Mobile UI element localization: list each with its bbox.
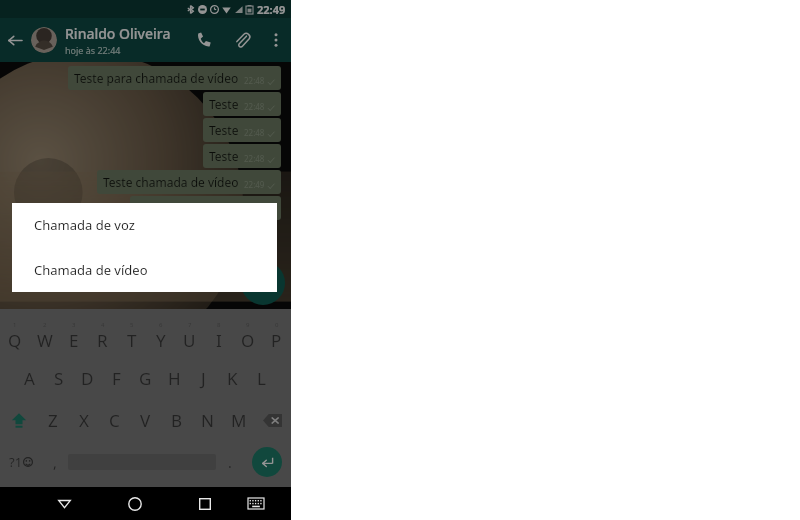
button[interactable]: S [44,357,73,399]
button[interactable]: 1 [0,315,30,357]
button[interactable]: Hide keyboard [44,487,84,520]
staticText: T [127,329,137,352]
button[interactable]: Attach [223,21,261,59]
staticText: K [227,367,238,390]
button[interactable]: Teste [203,118,281,142]
staticText: . [228,453,232,472]
staticText: 22:48 [244,75,265,86]
staticText: 5 [130,321,134,329]
staticText: 22:49 [244,179,265,190]
button[interactable]: D [73,357,102,399]
staticText: W [37,329,53,352]
staticText: 4 [101,321,105,329]
button[interactable]: B [161,399,192,441]
button[interactable]: Teste [203,144,281,168]
staticText: V [140,409,151,432]
staticText: A [24,367,35,390]
button[interactable]: Chamada de voz [12,203,277,247]
staticText: 22:48 [244,153,265,164]
staticText: F [112,367,121,390]
button[interactable]: Hide keyboard [44,487,84,520]
button[interactable]: Send voice message [241,261,285,305]
button[interactable]: Recent apps [185,487,224,520]
staticText: Y [156,329,166,352]
button[interactable]: More options [261,25,291,55]
staticText: Print para matéria [136,200,239,216]
button[interactable]: Home [115,487,154,520]
button[interactable]: H [160,357,189,399]
button[interactable]: 3 [59,315,88,357]
button[interactable]: Chamada de vídeo [12,247,277,292]
staticText: , [53,453,57,472]
button[interactable]: L [247,357,276,399]
staticText: 2 [43,321,47,329]
button[interactable]: Home [115,487,154,520]
button[interactable]: Enter [243,441,291,483]
staticText: 8 [217,321,221,329]
button[interactable]: 9 [233,315,262,357]
button[interactable]: X [68,399,99,441]
button[interactable]: 4 [88,315,117,357]
button[interactable]: Back [0,26,28,54]
staticText: 22:48 [244,101,265,112]
staticText: Z [48,409,58,432]
button[interactable]: Teste [203,92,281,116]
button[interactable]: Symbols and emoji [0,441,41,483]
staticText: U [183,329,196,352]
staticText: Teste [209,96,239,112]
button[interactable]: N [192,399,223,441]
staticText: M [231,409,247,432]
button[interactable]: Switch keyboard [236,487,275,520]
button[interactable]: Backspace [254,399,291,441]
button[interactable]: Teste para chamada de vídeo [68,66,281,90]
staticText: N [201,409,214,432]
button[interactable]: 5 [117,315,146,357]
staticText: I [216,329,222,352]
button[interactable]: 0 [262,315,291,357]
staticText: Q [8,329,22,352]
button[interactable]: Switch keyboard [236,487,275,520]
button[interactable]: M [223,399,254,441]
button[interactable]: Z [37,399,68,441]
staticText: Chamada de voz [34,216,135,234]
button[interactable]: A [15,357,44,399]
button[interactable]: Recent apps [185,487,224,520]
staticText: Teste [209,148,239,164]
button[interactable]: K [218,357,247,399]
staticText: B [171,409,183,432]
staticText: D [81,367,94,390]
button[interactable]: Rinaldo Oliveira [65,24,185,56]
staticText: Teste para chamada de vídeo [74,70,239,86]
staticText: 3 [72,321,76,329]
staticText: 7 [188,321,192,329]
staticText: O [241,329,255,352]
button[interactable]: 7 [175,315,204,357]
button[interactable]: J [189,357,218,399]
staticText: 22:49 [257,2,286,17]
button[interactable]: G [131,357,160,399]
button[interactable]: 8 [204,315,233,357]
staticText: L [257,367,266,390]
staticText: S [54,367,64,390]
button[interactable]: F [102,357,131,399]
button[interactable]: Teste chamada de vídeo [97,170,281,194]
button[interactable]: Call [185,21,223,59]
button[interactable]: Print para matéria [130,196,281,220]
button[interactable]: 6 [146,315,175,357]
button[interactable]: 2 [30,315,59,357]
button[interactable]: Shift [0,399,37,441]
staticText: ?1 [9,453,23,471]
staticText: J [201,367,206,390]
button[interactable]: C [99,399,130,441]
button[interactable]: V [130,399,161,441]
staticText: H [168,367,181,390]
staticText: C [109,409,120,432]
staticText: hoje às 22:44 [65,44,121,56]
button[interactable]: Contact photo [31,27,57,53]
staticText: G [139,367,152,390]
